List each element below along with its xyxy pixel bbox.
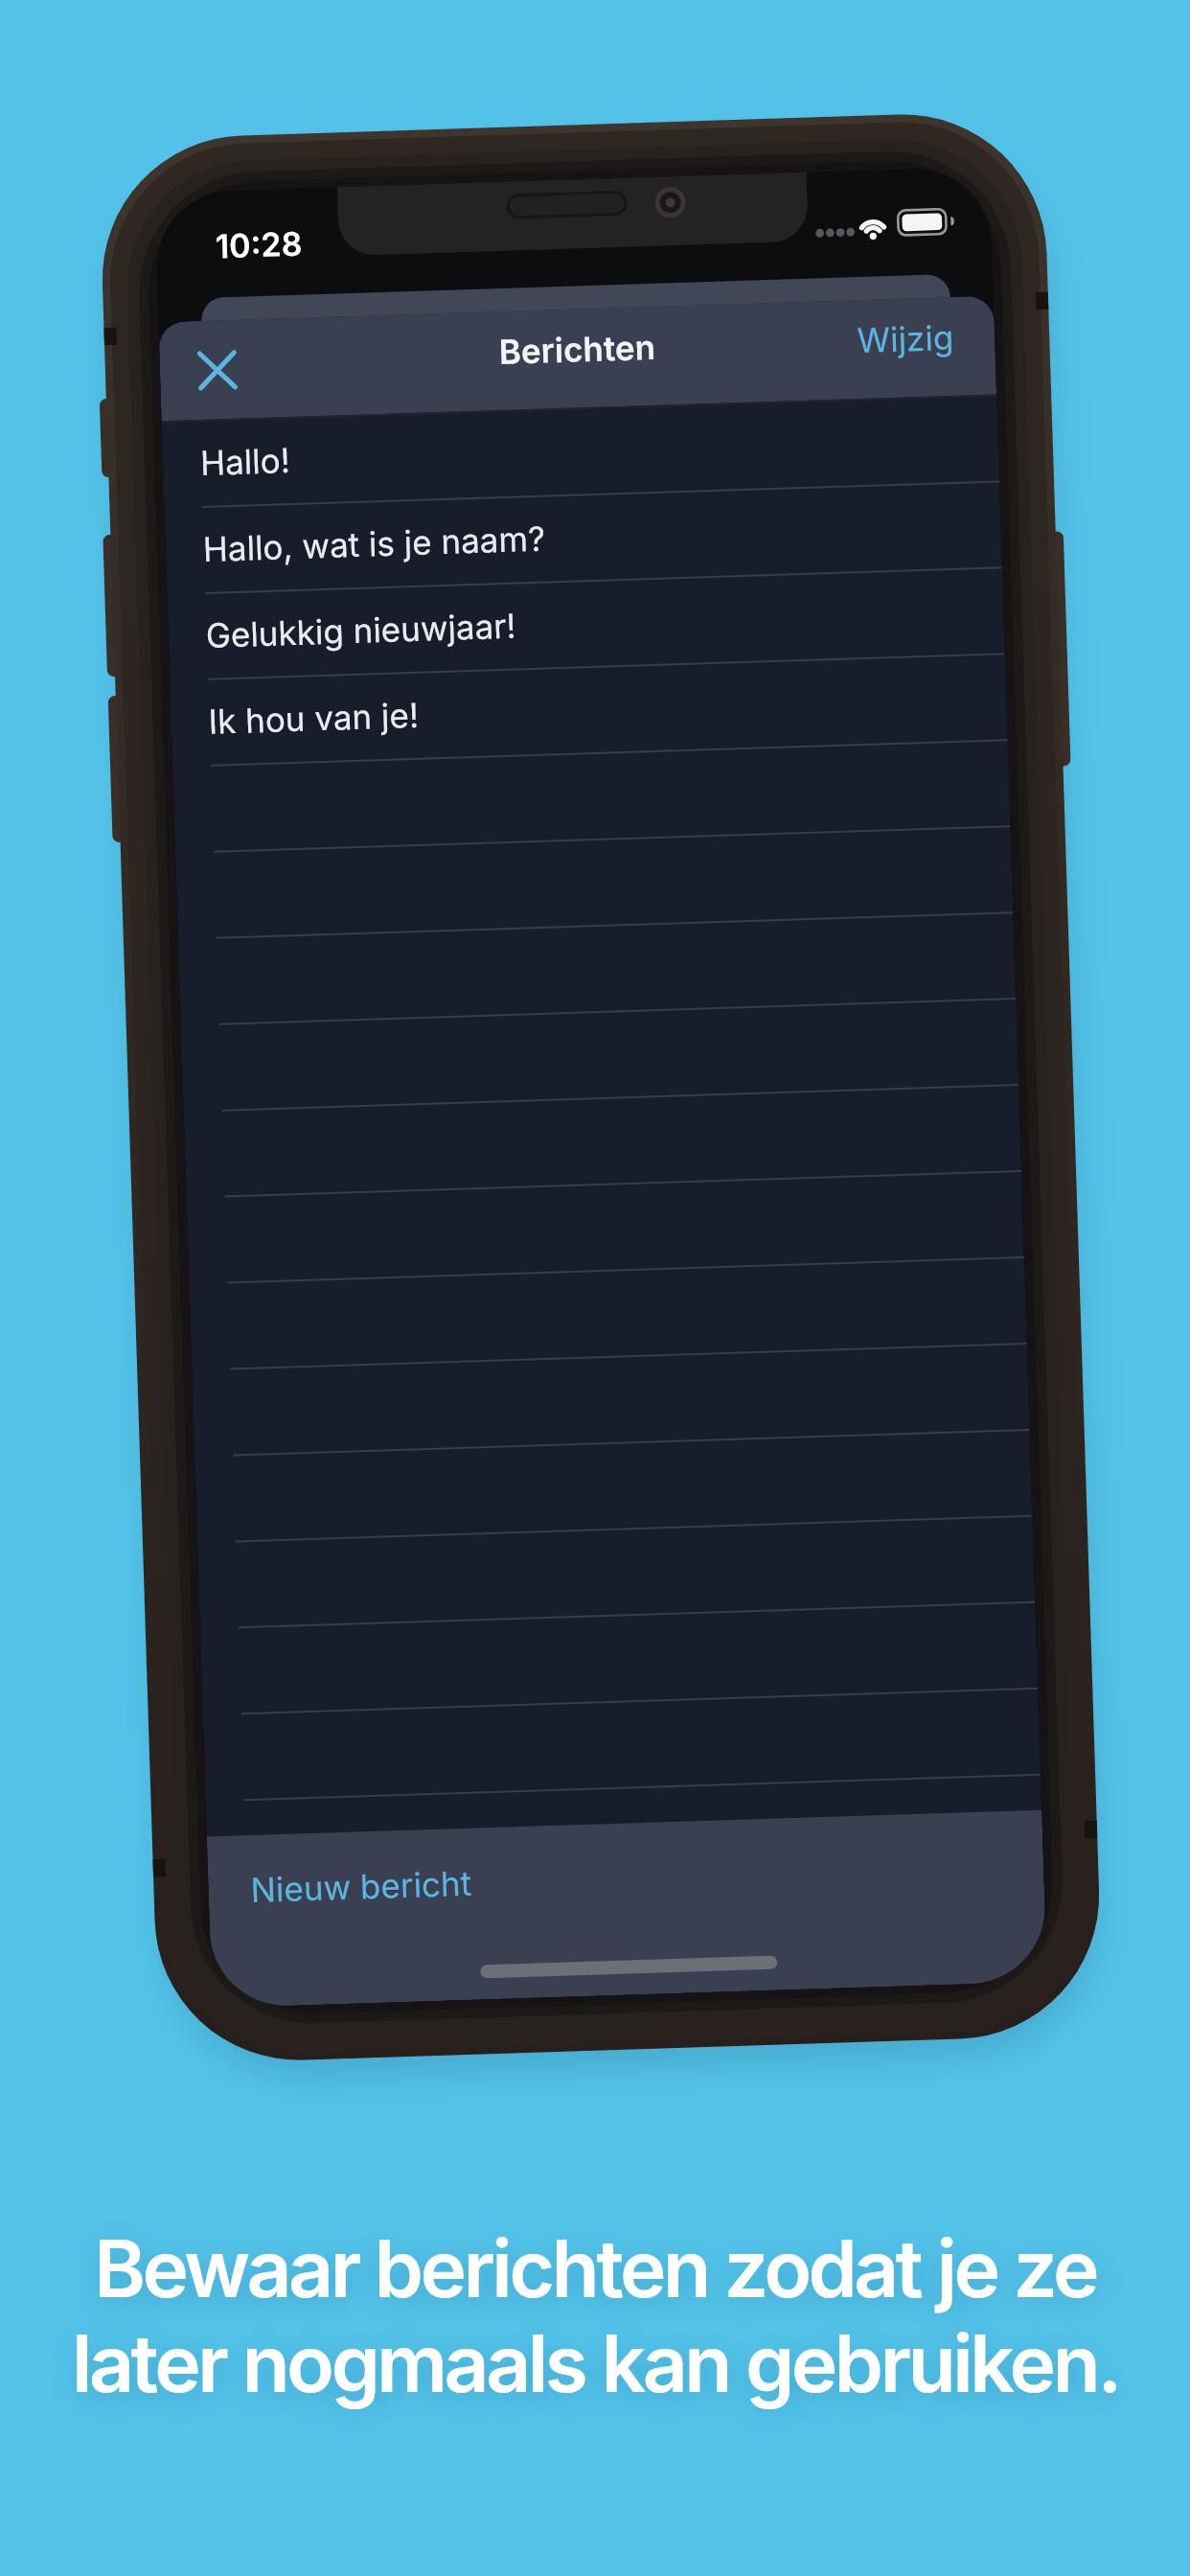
button[interactable]: Gelukkig nieuwjaar!	[167, 569, 1005, 681]
staticText: Ik hou van je!	[208, 695, 420, 742]
staticText: Gelukkig nieuwjaar!	[205, 605, 517, 655]
button[interactable]: Hallo, wat is je naam?	[164, 482, 1002, 595]
button[interactable]: Nieuw bericht	[250, 1863, 472, 1910]
staticText: Hallo, wat is je naam?	[202, 518, 547, 569]
button[interactable]: Ik hou van je!	[170, 655, 1008, 768]
button[interactable]: Wijzig	[159, 317, 954, 383]
button[interactable]	[196, 349, 239, 392]
button[interactable]: Hallo!	[162, 396, 999, 509]
staticText: later nogmaals kan gebruiken.	[72, 2316, 1119, 2411]
staticText: Berichten	[159, 316, 995, 383]
staticText: Bewaar berichten zodat je ze	[94, 2221, 1096, 2316]
staticText: Hallo!	[200, 440, 291, 483]
staticText: 10:28	[215, 224, 303, 266]
